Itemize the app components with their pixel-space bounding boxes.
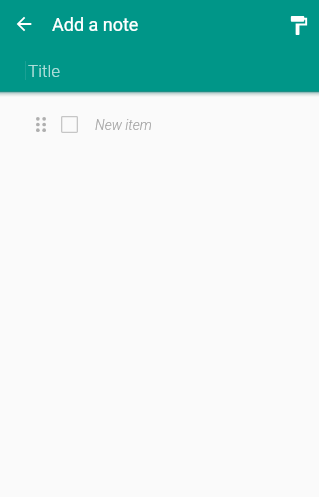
button[interactable]: New item bbox=[0, 97, 319, 152]
staticText: Add a note bbox=[52, 14, 139, 35]
button[interactable]: Change note colour bbox=[271, 0, 319, 48]
staticText: Title bbox=[28, 61, 61, 81]
staticText: New item bbox=[95, 117, 152, 133]
button[interactable]: Back bbox=[0, 0, 48, 48]
button[interactable]: Title bbox=[0, 51, 319, 91]
